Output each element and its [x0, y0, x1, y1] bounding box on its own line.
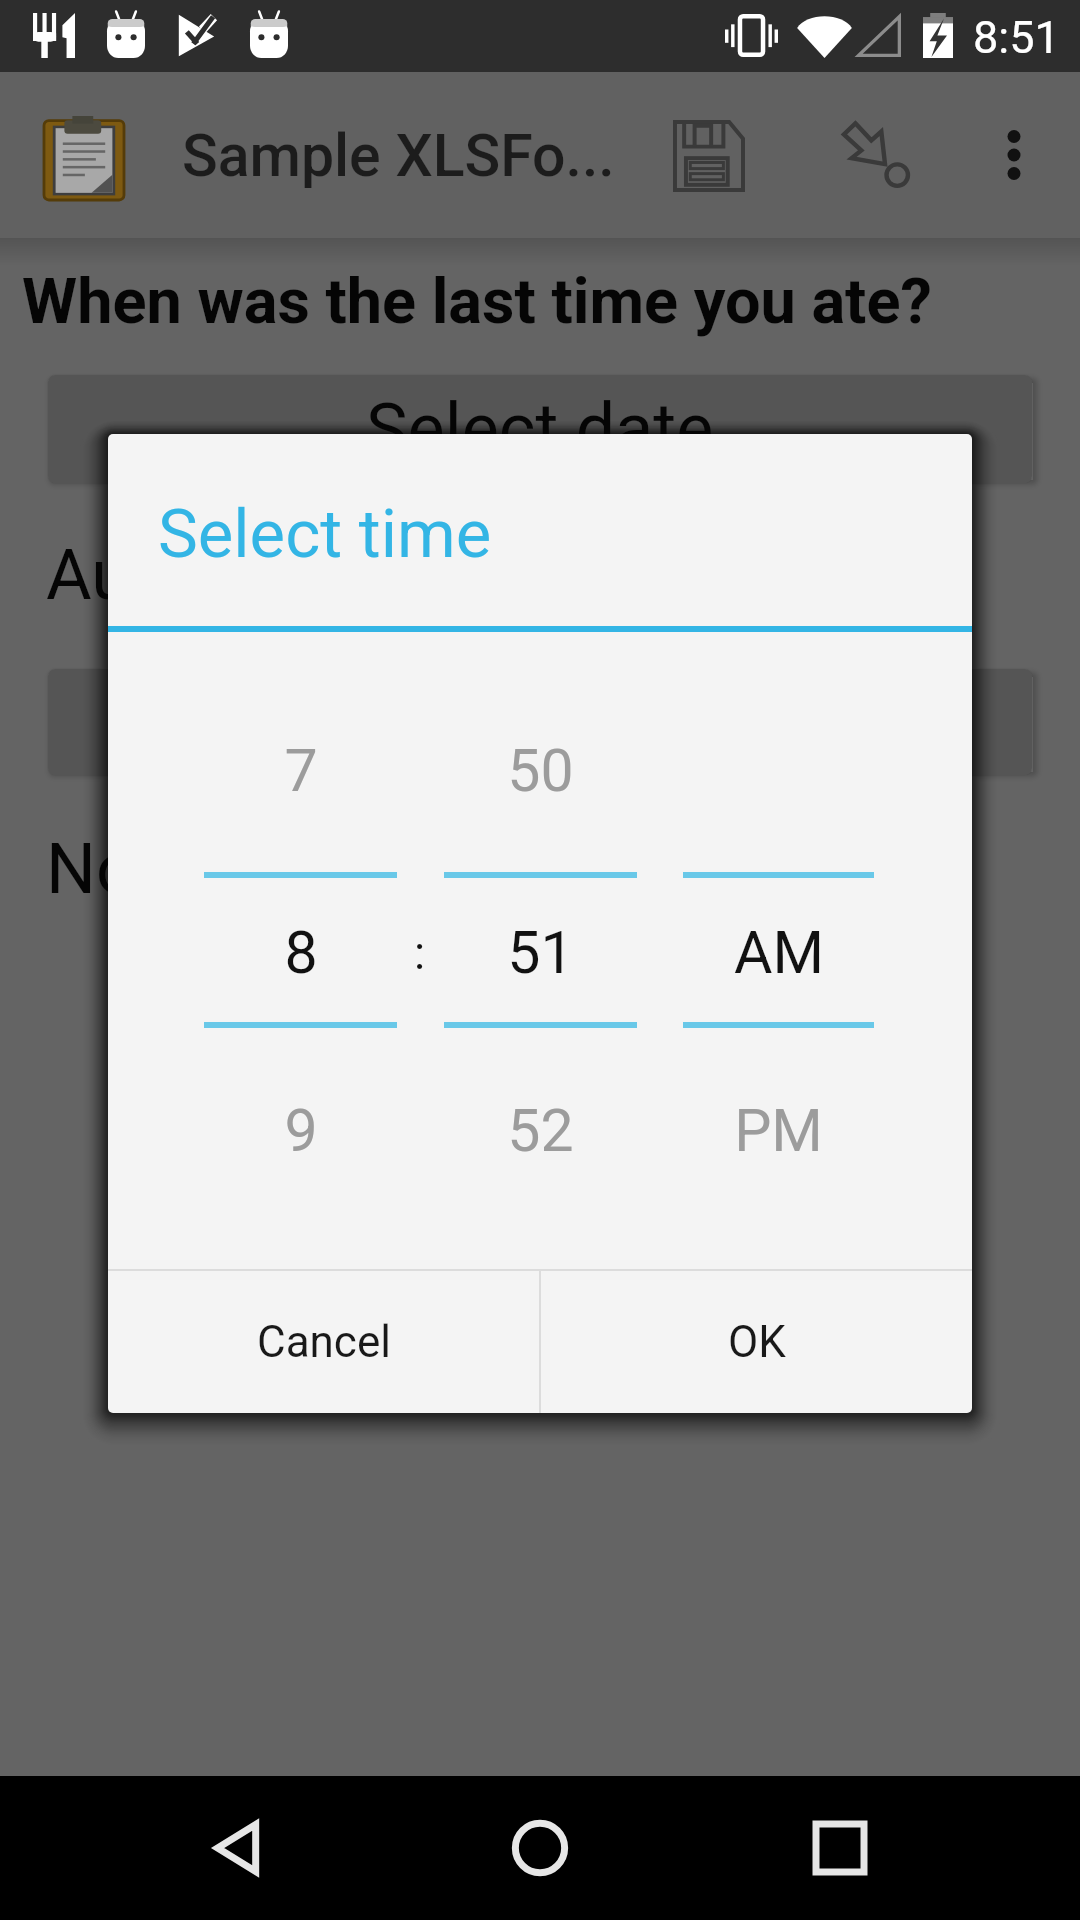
staticText: AM	[734, 918, 824, 987]
button[interactable]: Select date	[48, 375, 1032, 483]
button[interactable]: Save	[669, 116, 749, 196]
staticText: :	[414, 926, 426, 980]
staticText: When was the last time you ate?	[22, 265, 932, 339]
staticText: 52	[507, 1096, 574, 1165]
button[interactable]: Finalize form	[835, 110, 915, 195]
button[interactable]: PM	[683, 1085, 874, 1175]
staticText: 50	[507, 736, 574, 805]
staticText: Audio	[46, 534, 227, 616]
button[interactable]: Home	[480, 1788, 600, 1908]
button[interactable]: Recent apps	[780, 1788, 900, 1908]
staticText: 9	[284, 1096, 318, 1165]
staticText: OK	[728, 1316, 786, 1368]
button[interactable]: AM	[683, 907, 874, 997]
button[interactable]: 8	[204, 907, 397, 997]
staticText: Select time	[158, 495, 492, 574]
staticText: 51	[507, 918, 574, 987]
staticText: Cancel	[257, 1316, 391, 1368]
staticText: Select date	[366, 388, 714, 470]
staticText: Note	[46, 828, 196, 910]
staticText: 8	[284, 918, 318, 987]
button[interactable]: 51	[444, 907, 637, 997]
staticText: Sample XLSFo...	[182, 121, 615, 190]
staticText: 7	[284, 736, 318, 805]
staticText: 8:51	[973, 11, 1060, 64]
button[interactable]: 9	[204, 1085, 397, 1175]
other: App icon	[44, 116, 124, 200]
button[interactable]	[48, 669, 1032, 775]
button[interactable]: 7	[204, 725, 397, 815]
staticText: PM	[734, 1096, 823, 1165]
button[interactable]: OK	[541, 1271, 972, 1413]
button[interactable]: 50	[444, 725, 637, 815]
button[interactable]: More options	[984, 125, 1044, 185]
button[interactable]: Back	[180, 1788, 300, 1908]
button[interactable]: Cancel	[108, 1271, 539, 1413]
button[interactable]: 52	[444, 1085, 637, 1175]
